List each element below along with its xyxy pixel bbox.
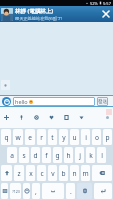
button[interactable]: z xyxy=(14,165,24,181)
button[interactable]: l xyxy=(97,147,106,163)
button[interactable]: Keyboard tool 2 xyxy=(18,114,24,120)
staticText: a xyxy=(10,151,14,160)
button[interactable]: t xyxy=(48,129,57,145)
button[interactable]: q xyxy=(1,129,11,145)
staticText: m xyxy=(82,169,89,178)
button[interactable]: Close xyxy=(99,6,113,22)
staticText: q xyxy=(4,133,9,142)
button[interactable]: d xyxy=(31,147,40,163)
button[interactable]: o xyxy=(92,129,101,145)
button[interactable]: hello xyxy=(15,97,93,106)
button[interactable]: h xyxy=(64,147,73,163)
button[interactable]: Keyboard tool 4 xyxy=(48,114,54,120)
button[interactable]: Scroll to latest message xyxy=(1,80,10,90)
staticText: n xyxy=(72,169,77,178)
button[interactable]: u xyxy=(70,129,79,145)
button[interactable]: ?123 xyxy=(10,183,21,199)
staticText: 林靜 (電腦林上) xyxy=(15,7,54,15)
staticText: j xyxy=(79,151,81,160)
staticText: , xyxy=(35,187,37,196)
button[interactable]: Enter xyxy=(94,183,112,199)
button[interactable]: Keyboard tool 6 xyxy=(78,114,84,120)
button[interactable]: Grid xyxy=(1,183,8,199)
button[interactable]: Keyboard tool 5 xyxy=(63,114,69,120)
staticText: f xyxy=(45,151,48,160)
button[interactable]: s xyxy=(19,147,29,163)
staticText: 5:57 xyxy=(103,1,111,6)
button[interactable]: a xyxy=(7,147,17,163)
button[interactable]: Keyboard tool 3 xyxy=(33,114,39,120)
button[interactable]: Keyboard tool 7 xyxy=(104,114,110,120)
button[interactable]: 發送 xyxy=(97,97,108,106)
button[interactable]: c xyxy=(37,165,46,181)
button[interactable]: Keyboard tool 1 xyxy=(3,114,9,120)
button[interactable]: r xyxy=(37,129,46,145)
button[interactable]: b xyxy=(59,165,68,181)
button[interactable]: y xyxy=(59,129,68,145)
button[interactable]: Emoji xyxy=(23,183,30,199)
staticText: r xyxy=(40,133,43,142)
staticText: h xyxy=(66,151,71,160)
staticText: 發送 xyxy=(98,99,108,105)
staticText: ?123 xyxy=(12,189,20,194)
staticText: e xyxy=(28,133,32,142)
staticText: d xyxy=(33,151,38,160)
staticText: i xyxy=(85,133,87,142)
button[interactable]: Back xyxy=(92,165,112,181)
button[interactable]: v xyxy=(48,165,57,181)
button[interactable]: Profile photo xyxy=(1,8,13,21)
button[interactable]: x xyxy=(26,165,35,181)
button[interactable]: g xyxy=(53,147,62,163)
button[interactable]: , xyxy=(32,183,40,199)
staticText: o xyxy=(95,133,99,142)
button[interactable]: Add emoticon xyxy=(2,97,11,106)
staticText: c xyxy=(40,169,44,178)
button[interactable]: k xyxy=(86,147,95,163)
button[interactable]: p xyxy=(103,129,112,145)
staticText: b xyxy=(61,169,66,178)
staticText: y xyxy=(62,133,66,142)
staticText: v xyxy=(51,169,55,178)
staticText: 哪天正義能站在我的那了! xyxy=(15,16,63,22)
staticText: w xyxy=(15,133,21,142)
button[interactable]: j xyxy=(75,147,84,163)
button[interactable]: Space xyxy=(42,183,64,199)
staticText: l xyxy=(101,151,103,160)
staticText: 52% xyxy=(90,1,98,6)
staticText: . xyxy=(70,187,72,196)
staticText: k xyxy=(89,151,93,160)
button[interactable]: e xyxy=(25,129,35,145)
button[interactable]: f xyxy=(42,147,51,163)
staticText: g xyxy=(55,151,60,160)
staticText: s xyxy=(22,151,26,160)
button[interactable]: m xyxy=(81,165,90,181)
button[interactable]: Shift xyxy=(1,165,12,181)
staticText: hello xyxy=(15,98,28,105)
staticText: t xyxy=(51,133,54,142)
staticText: u xyxy=(72,133,77,142)
staticText: p xyxy=(105,133,110,142)
button[interactable]: Lang xyxy=(77,183,92,199)
button[interactable]: w xyxy=(13,129,23,145)
button[interactable]: . xyxy=(66,183,75,199)
button[interactable]: n xyxy=(70,165,79,181)
staticText: z xyxy=(17,169,21,178)
staticText: x xyxy=(29,169,33,178)
button[interactable]: i xyxy=(81,129,90,145)
